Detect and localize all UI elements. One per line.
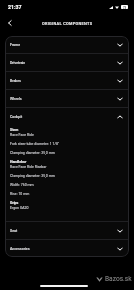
staticText: Race Face Ride [10,133,34,137]
staticText: Grips [10,201,19,205]
staticText: Cockpit [10,115,23,119]
staticText: ORIGINAL COMPONENTS [42,21,93,26]
staticText: Fork steer tube diameter: 1 1/8" [10,142,60,146]
staticText: Clamping diameter: 35,0 mm [10,174,55,178]
button[interactable]: Cockpit [5,108,129,125]
button[interactable]: Drivetrain [5,54,129,71]
staticText: Frame [10,43,21,47]
staticText: Accessories [10,247,30,251]
staticText: Drivetrain [10,61,26,65]
staticText: 21:37 [8,4,22,10]
button[interactable]: Seat [5,222,129,239]
staticText: Brakes [10,79,21,83]
button[interactable]: Frame [5,36,129,53]
button[interactable]: Wheels [5,90,129,107]
staticText: Race Face Ride Risebar [10,165,47,169]
staticText: Ergon GA20 [10,206,29,210]
staticText: Handlebar [10,160,27,164]
staticText: 73 [123,6,127,9]
staticText: Wheels [10,97,22,101]
staticText: Width: 760 mm [10,183,34,187]
staticText: Bazos.sk [105,275,132,283]
staticText: Seat [10,229,18,233]
staticText: Rise: 10 mm [10,192,30,196]
button[interactable]: Back [3,16,17,30]
button[interactable]: Accessories [5,240,129,257]
staticText: Clamping diameter: 35,0 mm [10,151,55,155]
button[interactable]: Brakes [5,72,129,89]
staticText: Stem [10,128,19,132]
